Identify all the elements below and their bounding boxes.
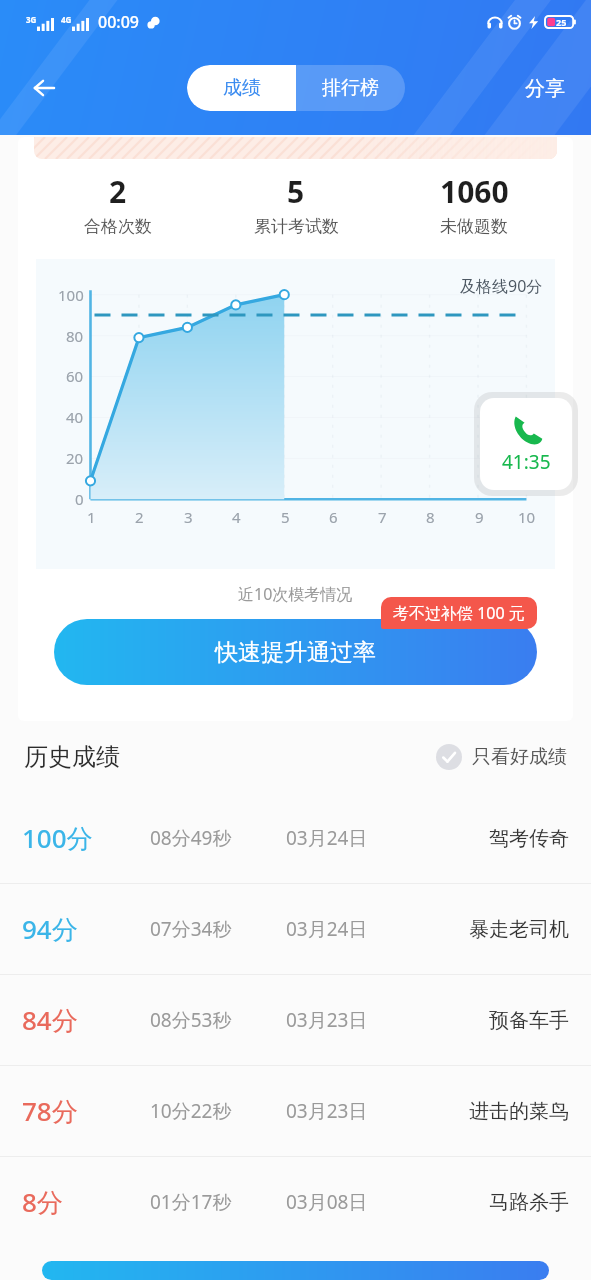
staticText: 历史成绩 — [24, 742, 120, 772]
staticText: 2 — [109, 171, 127, 212]
staticText: 9 — [475, 507, 484, 527]
staticText: 1 — [87, 507, 96, 527]
staticText: 80 — [66, 326, 84, 346]
staticText: 未做题数 — [440, 216, 508, 237]
staticText: 00:09 — [98, 11, 139, 33]
staticText: 进击的菜鸟 — [469, 1099, 569, 1124]
button[interactable]: 84分 — [0, 975, 591, 1065]
button[interactable]: 只看好成绩 — [430, 738, 573, 776]
staticText: 08分53秒 — [150, 1007, 232, 1033]
staticText: 4 — [232, 507, 241, 527]
staticText: 41:35 — [502, 449, 551, 475]
staticText: 5 — [281, 507, 290, 527]
staticText: 08分49秒 — [150, 825, 232, 851]
staticText: 暴走老司机 — [469, 917, 569, 942]
staticText: 分享 — [525, 76, 565, 101]
staticText: 03月08日 — [286, 1189, 368, 1215]
staticText: 100 — [58, 285, 84, 305]
button[interactable]: 分享 — [517, 68, 573, 109]
staticText: 0 — [75, 489, 84, 509]
staticText: 3G — [26, 14, 37, 25]
staticText: 10分22秒 — [150, 1098, 232, 1124]
staticText: 8分 — [22, 1184, 63, 1220]
button[interactable]: 78分 — [0, 1066, 591, 1156]
staticText: 累计考试数 — [254, 216, 339, 237]
staticText: 03月24日 — [286, 916, 368, 942]
staticText: 10 — [518, 507, 536, 527]
staticText: 84分 — [22, 1002, 78, 1038]
staticText: 03月23日 — [286, 1007, 368, 1033]
button[interactable]: 100分 — [0, 793, 591, 883]
staticText: 及格线90分 — [460, 275, 543, 297]
staticText: 马路杀手 — [489, 1190, 569, 1215]
staticText: 20 — [66, 448, 84, 468]
staticText: 01分17秒 — [150, 1189, 232, 1215]
staticText: 4G — [61, 14, 72, 25]
staticText: 7 — [378, 507, 387, 527]
staticText: 100分 — [22, 820, 93, 856]
staticText: 40 — [66, 407, 84, 427]
staticText: 25 — [556, 16, 567, 28]
button[interactable]: 排行榜 — [296, 65, 405, 111]
staticText: 驾考传奇 — [489, 826, 569, 851]
staticText: 排行榜 — [322, 76, 379, 100]
staticText: 8 — [426, 507, 435, 527]
staticText: 只看好成绩 — [472, 745, 567, 769]
staticText: 6 — [329, 507, 338, 527]
button[interactable]: Back — [20, 64, 68, 112]
staticText: 考不过补偿 100 元 — [393, 602, 525, 624]
staticText: 5 — [287, 171, 305, 212]
staticText: 2 — [135, 507, 144, 527]
button[interactable]: 94分 — [0, 884, 591, 974]
staticText: 近10次模考情况 — [238, 583, 353, 605]
staticText: 78分 — [22, 1093, 78, 1129]
staticText: 预备车手 — [489, 1008, 569, 1033]
button[interactable] — [42, 1261, 549, 1280]
button[interactable]: 快速提升通过率 — [54, 619, 537, 685]
button[interactable]: 8分 — [0, 1157, 591, 1247]
button[interactable]: Ongoing call — [480, 398, 572, 490]
staticText: 1060 — [440, 171, 509, 212]
staticText: 03月23日 — [286, 1098, 368, 1124]
staticText: 94分 — [22, 911, 78, 947]
staticText: 60 — [66, 366, 84, 386]
staticText: 成绩 — [223, 76, 261, 100]
staticText: 03月24日 — [286, 825, 368, 851]
staticText: 快速提升通过率 — [215, 638, 376, 667]
staticText: 3 — [184, 507, 193, 527]
button[interactable]: 成绩 — [187, 65, 296, 111]
staticText: 07分34秒 — [150, 916, 232, 942]
staticText: 合格次数 — [84, 216, 152, 237]
